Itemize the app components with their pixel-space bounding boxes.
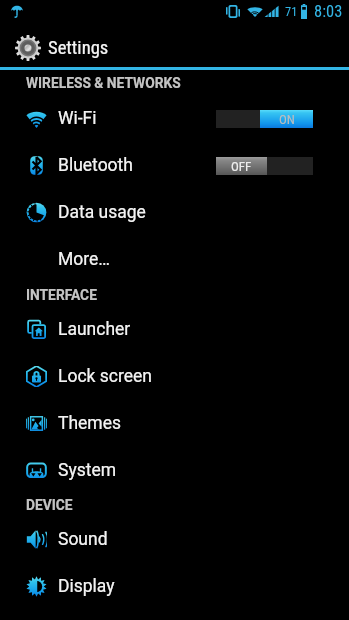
- button[interactable]: OFF: [216, 157, 313, 175]
- staticText: System: [58, 460, 117, 481]
- staticText: Sound: [58, 529, 108, 550]
- button[interactable]: Lock screen: [0, 353, 349, 400]
- staticText: Display: [58, 576, 115, 597]
- button[interactable]: Themes: [0, 400, 349, 447]
- staticText: INTERFACE: [26, 287, 97, 303]
- staticText: WIRELESS & NETWORKS: [26, 75, 181, 91]
- staticText: Data usage: [58, 202, 146, 223]
- button[interactable]: Launcher: [0, 306, 349, 353]
- staticText: Lock screen: [58, 366, 152, 387]
- button[interactable]: More…: [0, 236, 349, 283]
- button[interactable]: Bluetooth: [0, 142, 349, 189]
- staticText: More…: [58, 249, 111, 270]
- staticText: Settings: [48, 37, 109, 59]
- staticText: Wi-Fi: [58, 108, 97, 129]
- staticText: Themes: [58, 413, 122, 434]
- staticText: OFF: [231, 159, 252, 174]
- button[interactable]: System: [0, 447, 349, 494]
- staticText: ON: [279, 112, 295, 127]
- button[interactable]: ON: [216, 110, 313, 128]
- staticText: Bluetooth: [58, 155, 133, 176]
- button[interactable]: Sound: [0, 516, 349, 563]
- staticText: DEVICE: [26, 497, 73, 513]
- button[interactable]: Settings: [0, 22, 349, 67]
- button[interactable]: Display: [0, 563, 349, 610]
- staticText: 71: [285, 4, 298, 19]
- staticText: 8:03: [314, 2, 343, 21]
- staticText: Launcher: [58, 319, 131, 340]
- button[interactable]: Wi-Fi: [0, 95, 349, 142]
- button[interactable]: Data usage: [0, 189, 349, 236]
